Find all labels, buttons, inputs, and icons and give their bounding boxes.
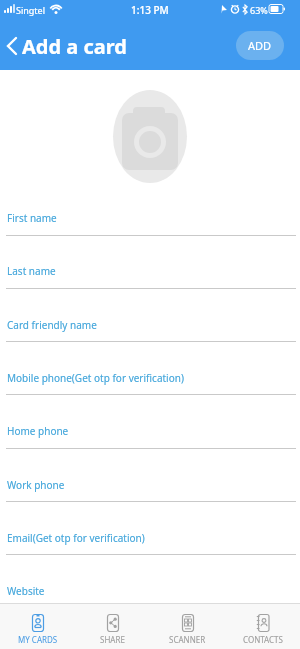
staticText: 63% bbox=[250, 4, 268, 16]
staticText: Singtel bbox=[16, 4, 46, 16]
staticText: Last name bbox=[7, 264, 56, 278]
staticText: Add a card bbox=[22, 33, 127, 60]
button[interactable]: ADD bbox=[236, 31, 284, 60]
button[interactable] bbox=[6, 37, 18, 55]
button[interactable]: MY CARDS bbox=[0, 603, 75, 649]
staticText: Website bbox=[7, 584, 45, 598]
button[interactable]: First name bbox=[0, 203, 300, 231]
staticText: MY CARDS bbox=[18, 634, 58, 645]
staticText: ADD bbox=[248, 38, 272, 53]
staticText: CONTACTS bbox=[243, 634, 283, 645]
button[interactable]: SHARE bbox=[75, 603, 150, 649]
button[interactable]: Work phone bbox=[0, 470, 300, 498]
staticText: Card friendly name bbox=[7, 318, 97, 332]
button[interactable]: Home phone bbox=[0, 416, 300, 444]
button[interactable]: Website bbox=[0, 576, 300, 604]
staticText: SCANNER bbox=[169, 634, 206, 645]
staticText: SHARE bbox=[100, 634, 125, 645]
button[interactable]: SCANNER bbox=[150, 603, 225, 649]
button[interactable]: Last name bbox=[0, 256, 300, 284]
staticText: 1:13 PM bbox=[131, 3, 169, 17]
button[interactable]: CONTACTS bbox=[225, 603, 300, 649]
button[interactable]: Email(Get otp for verification) bbox=[0, 523, 300, 551]
staticText: Work phone bbox=[7, 478, 65, 492]
staticText: Home phone bbox=[7, 424, 69, 438]
button[interactable]: Card friendly name bbox=[0, 310, 300, 338]
staticText: First name bbox=[7, 211, 57, 225]
staticText: Email(Get otp for verification) bbox=[7, 531, 145, 545]
button[interactable]: Mobile phone(Get otp for verification) bbox=[0, 363, 300, 391]
staticText: Mobile phone(Get otp for verification) bbox=[7, 371, 184, 385]
